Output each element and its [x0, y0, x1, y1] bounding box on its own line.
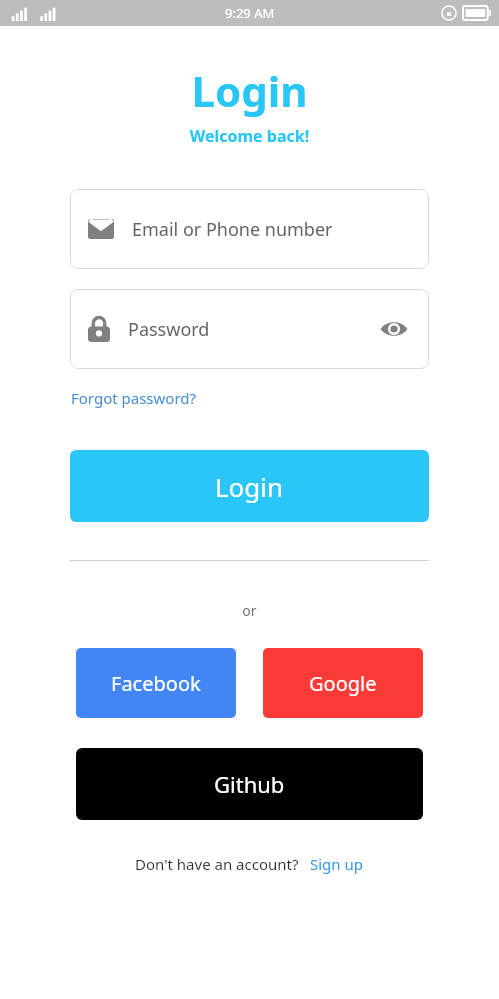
other: Email	[88, 219, 114, 239]
staticText: Password	[128, 317, 377, 342]
button[interactable]: Facebook	[76, 648, 236, 718]
staticText: 9:29 AM	[225, 4, 275, 22]
button[interactable]: Email	[70, 189, 429, 269]
button[interactable]: Forgot password?	[70, 386, 198, 410]
staticText: Google	[309, 670, 377, 697]
staticText: or	[0, 601, 499, 620]
staticText: Forgot password?	[71, 388, 197, 408]
staticText: Login	[215, 469, 284, 504]
button[interactable]: Show password	[377, 317, 411, 341]
button[interactable]: Login	[70, 450, 429, 522]
staticText: Facebook	[111, 670, 201, 697]
staticText: Github	[214, 769, 285, 799]
staticText: Login	[0, 62, 499, 119]
other: Password	[88, 316, 110, 342]
staticText: Sign up	[310, 854, 363, 874]
staticText: Welcome back!	[0, 125, 499, 147]
button[interactable]: Google	[263, 648, 423, 718]
button[interactable]: Sign up	[309, 852, 364, 876]
button[interactable]: Github	[76, 748, 423, 820]
staticText: Email or Phone number	[132, 217, 411, 242]
button[interactable]: Password	[70, 289, 429, 369]
staticText: Don't have an account?	[135, 854, 299, 874]
